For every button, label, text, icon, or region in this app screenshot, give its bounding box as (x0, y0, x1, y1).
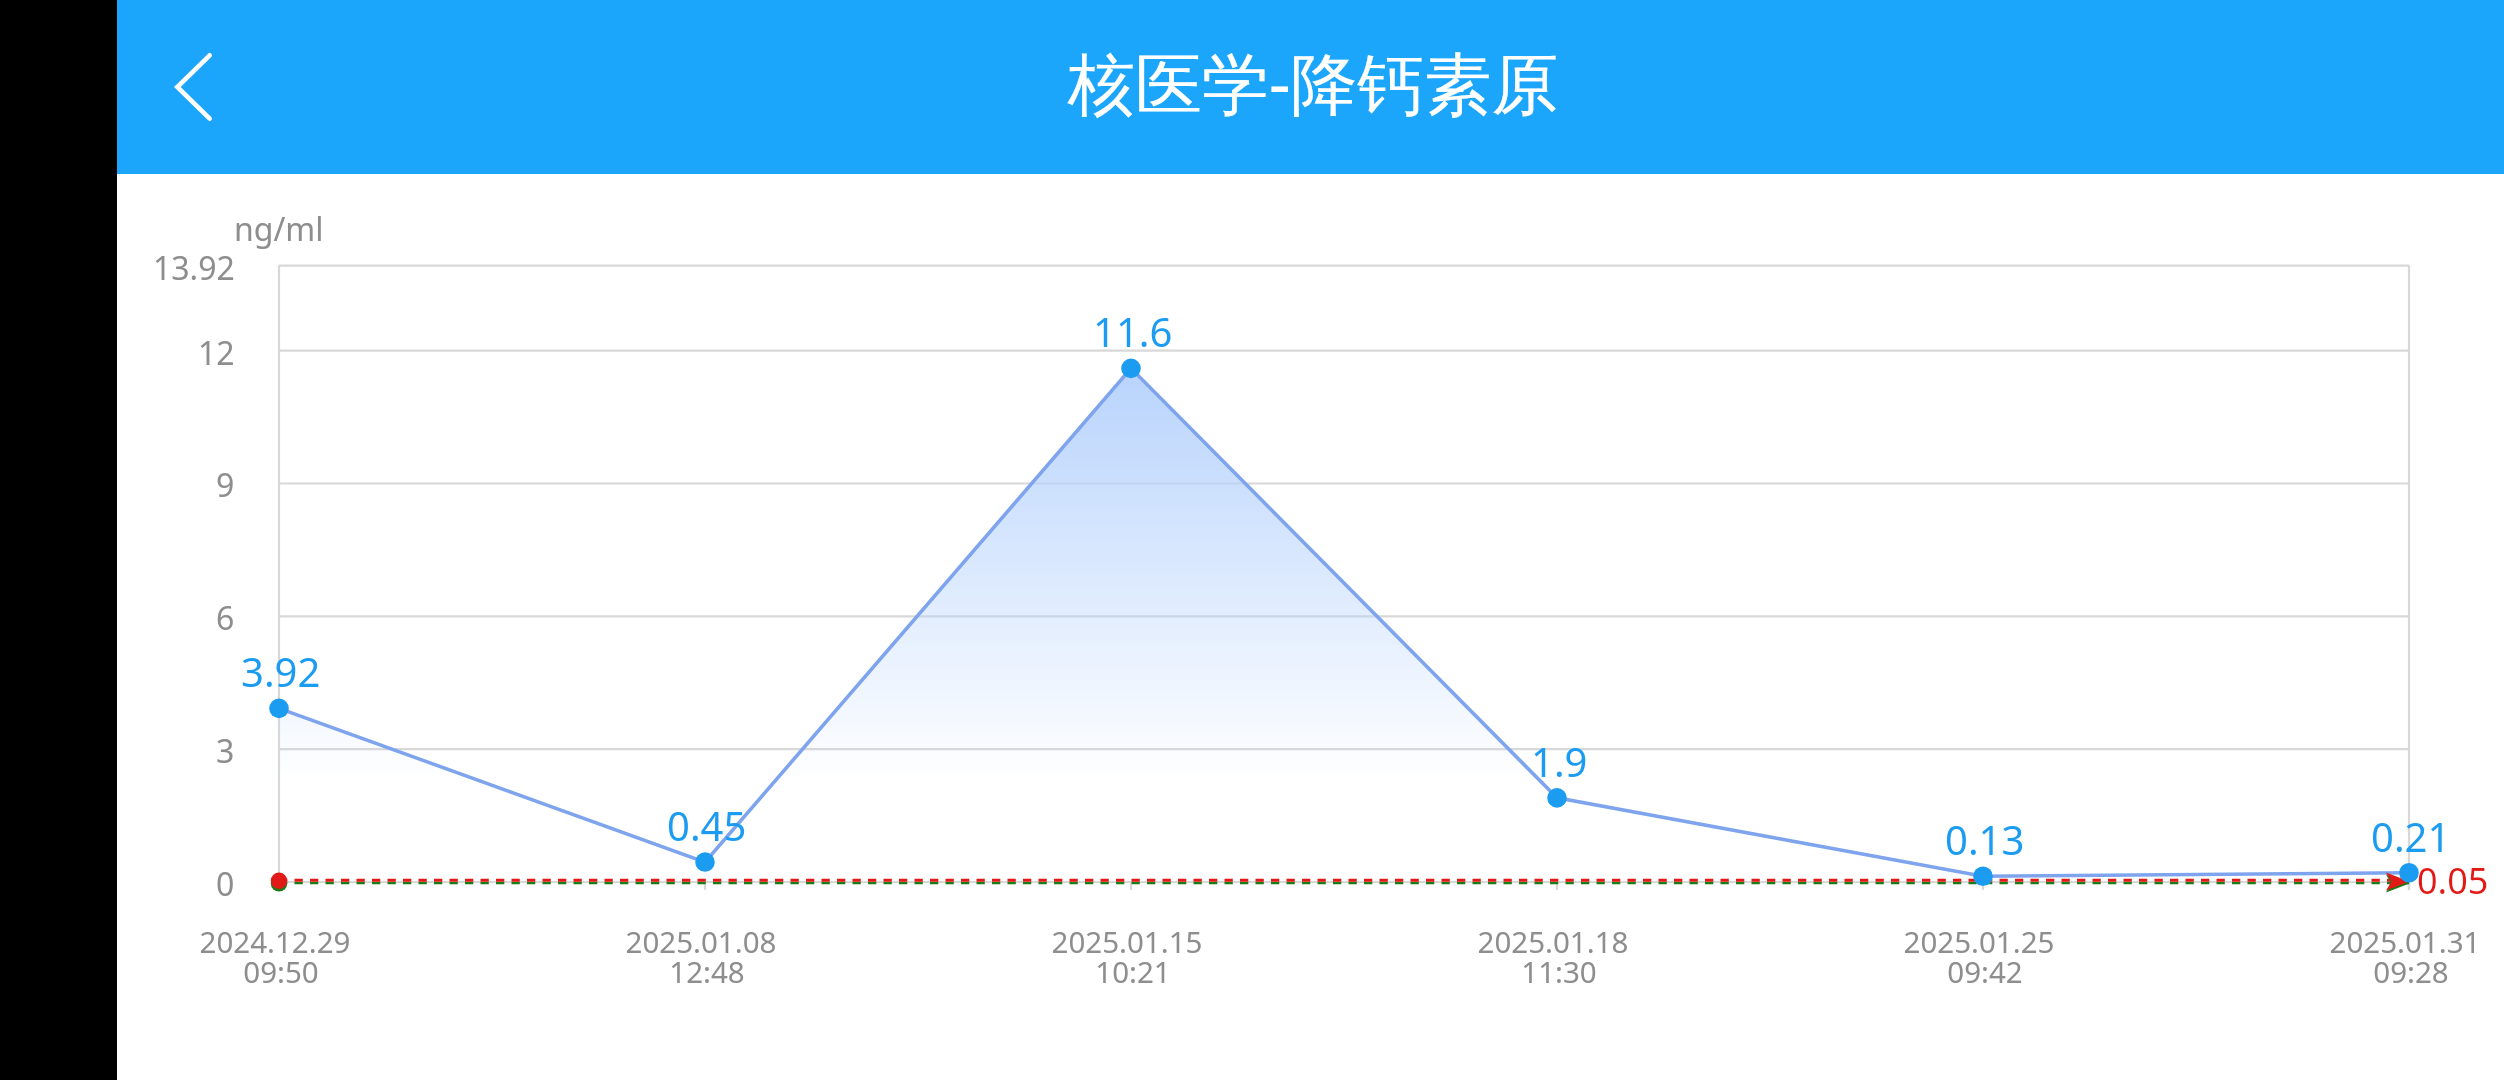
staticText: 13.92 (153, 246, 235, 290)
staticText: 12 (198, 331, 235, 375)
staticText: 2025.01.25 (1779, 921, 2179, 961)
staticText: 2025.01.31 (2205, 921, 2504, 961)
staticText: 11:30 (1359, 951, 1759, 991)
staticText: 2024.12.29 (75, 921, 475, 961)
staticText: 0.05 (2417, 856, 2489, 905)
button[interactable]: Back (175, 53, 212, 121)
staticText: 09:50 (81, 951, 481, 991)
staticText: 0.13 (1945, 812, 2025, 866)
staticText: 09:28 (2211, 951, 2504, 991)
button[interactable]: 11.6 (973, 304, 1293, 404)
staticText: 0.21 (2371, 809, 2451, 863)
staticText: 2025.01.08 (501, 921, 901, 961)
staticText: 12:48 (507, 951, 907, 991)
staticText: 6 (216, 596, 235, 640)
staticText: 11.6 (1093, 304, 1173, 358)
staticText: 0.45 (667, 798, 747, 852)
staticText: 2025.01.18 (1353, 921, 1753, 961)
staticText: 2025.01.15 (927, 921, 1327, 961)
staticText: 1.9 (1531, 734, 1588, 788)
staticText: 3 (216, 729, 235, 773)
button[interactable]: 3.92 (121, 644, 441, 744)
staticText: 0 (216, 862, 235, 906)
staticText: 09:42 (1785, 951, 2185, 991)
button[interactable]: 1.9 (1399, 734, 1719, 834)
staticText: 9 (216, 463, 235, 507)
button[interactable]: 0.45 (547, 798, 867, 898)
staticText: ng/ml (234, 207, 324, 251)
button[interactable]: 0.13 (1825, 812, 2145, 912)
staticText: 核医学-降钙素原 (1068, 36, 1559, 128)
staticText: 10:21 (933, 951, 1333, 991)
button[interactable]: 0.21 (2251, 809, 2504, 909)
staticText: 3.92 (241, 644, 321, 698)
